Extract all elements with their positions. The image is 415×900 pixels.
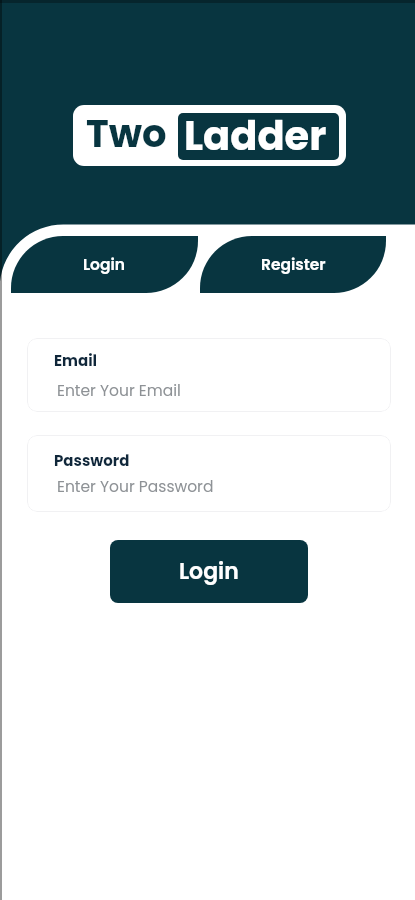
staticText: Two xyxy=(86,107,167,161)
staticText: Email xyxy=(54,350,98,371)
staticText: Password xyxy=(54,450,130,471)
button[interactable]: Email xyxy=(27,338,391,412)
staticText: Login xyxy=(179,556,239,587)
staticText: Login xyxy=(83,254,126,276)
staticText: Ladder xyxy=(184,113,327,155)
staticText: Register xyxy=(261,254,326,276)
staticText: Enter Your Password xyxy=(57,476,214,498)
button[interactable]: Login xyxy=(110,540,308,603)
staticText: Enter Your Email xyxy=(57,380,181,402)
button[interactable]: Login xyxy=(11,236,198,293)
button[interactable]: Password xyxy=(27,435,391,512)
button[interactable]: Register xyxy=(200,236,386,293)
